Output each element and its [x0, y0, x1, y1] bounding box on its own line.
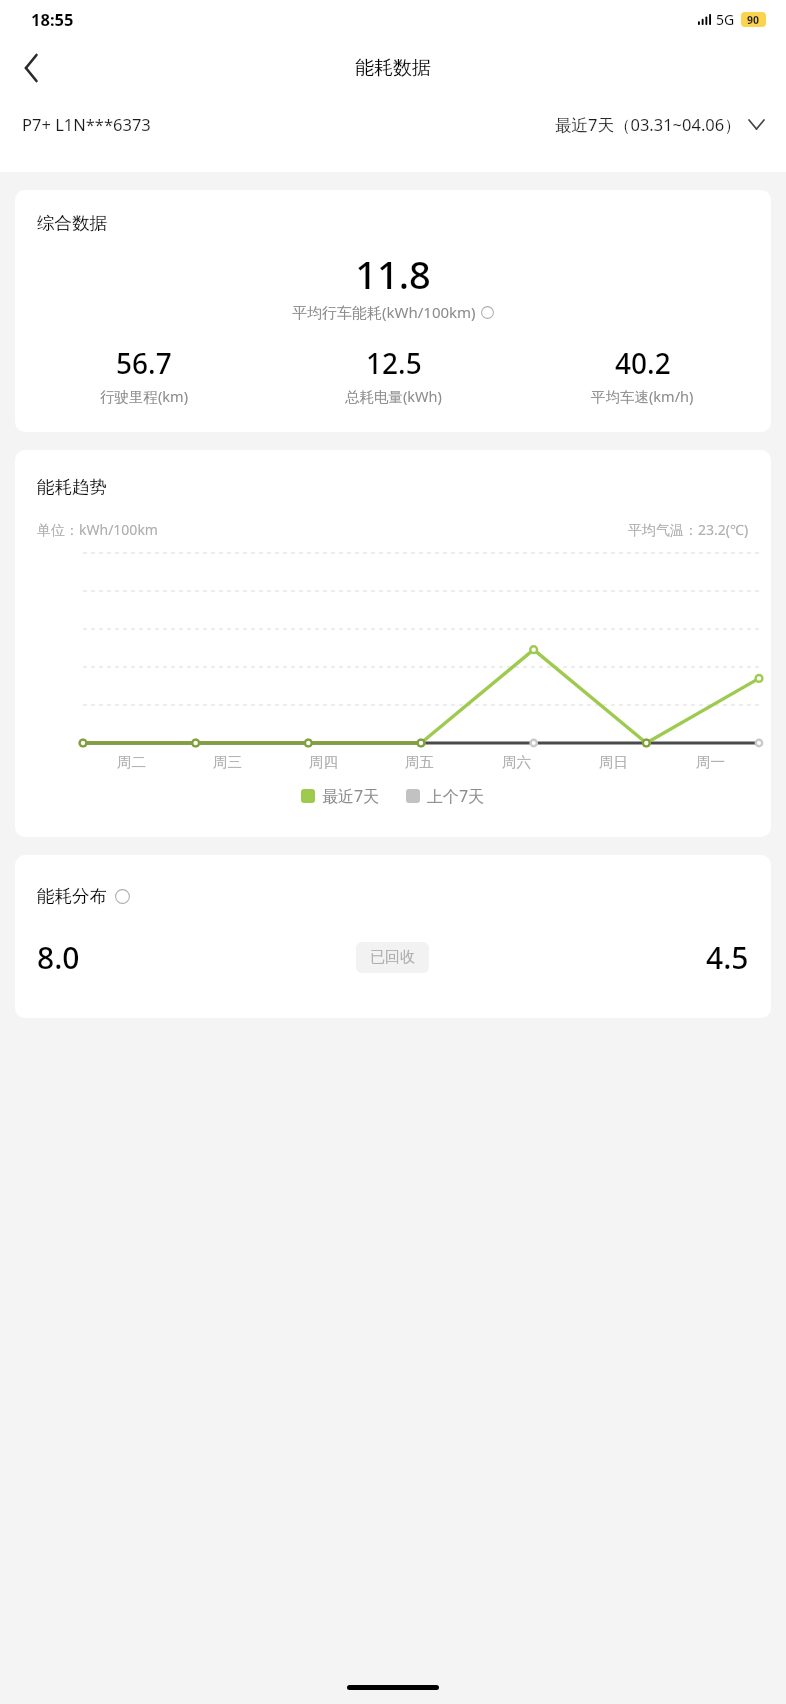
staticText: 90: [747, 13, 760, 27]
staticText: 周五: [405, 753, 434, 771]
staticText: 行驶里程(km): [100, 386, 189, 406]
staticText: 能耗数据: [355, 56, 431, 80]
staticText: 40.2: [615, 344, 671, 382]
staticText: 56.7: [116, 344, 172, 382]
staticText: 12.5: [366, 344, 422, 382]
staticText: 周四: [309, 753, 338, 771]
staticText: 单位：kWh/100km: [37, 520, 158, 539]
staticText: 平均行车能耗(kWh/100km): [292, 302, 476, 322]
staticText: 总耗电量(kWh): [345, 386, 442, 406]
button[interactable]: 最近7天（03.31~04.06）: [555, 113, 764, 136]
staticText: 平均气温：23.2(℃): [628, 520, 749, 539]
staticText: 周六: [502, 753, 531, 771]
staticText: 周日: [599, 753, 628, 771]
staticText: 上个7天: [427, 785, 485, 807]
staticText: 已回收: [370, 948, 415, 967]
staticText: 周三: [213, 753, 242, 771]
staticText: 最近7天（03.31~04.06）: [555, 113, 741, 136]
staticText: 平均车速(km/h): [591, 386, 694, 406]
staticText: 周一: [696, 753, 725, 771]
staticText: 最近7天: [322, 785, 380, 807]
button[interactable]: 上个7天: [406, 785, 485, 807]
staticText: 8.0: [37, 937, 80, 978]
staticText: 18:55: [31, 8, 74, 30]
staticText: 能耗趋势: [37, 476, 107, 498]
staticText: 能耗分布: [37, 885, 107, 907]
staticText: 5G: [716, 10, 735, 29]
staticText: 11.8: [15, 248, 771, 300]
button[interactable]: Back: [10, 46, 54, 90]
staticText: 4.5: [706, 937, 749, 978]
button[interactable]: 最近7天: [301, 785, 380, 807]
staticText: 周二: [117, 753, 146, 771]
staticText: 综合数据: [37, 212, 107, 234]
staticText: P7+ L1N***6373: [22, 113, 151, 135]
